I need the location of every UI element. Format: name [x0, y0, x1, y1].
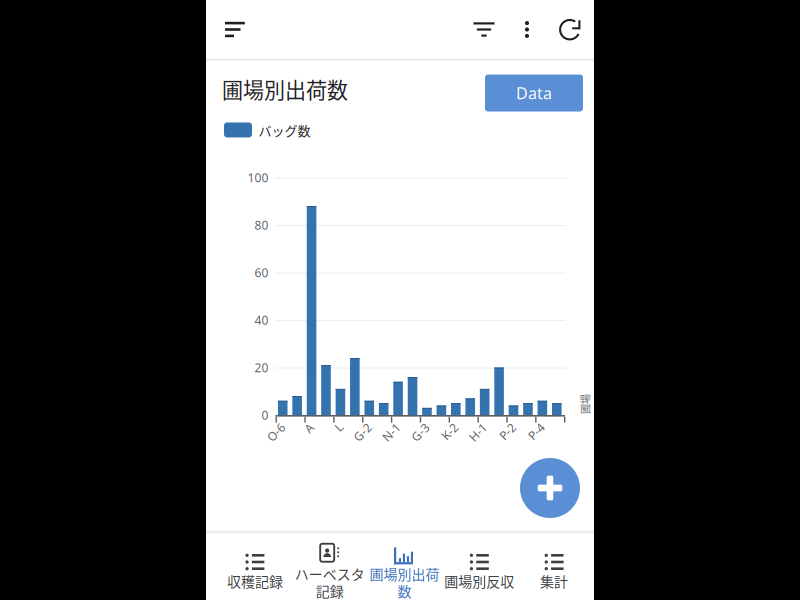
button[interactable]: ハーベスタ: [292, 533, 367, 600]
staticText: バッグ数: [258, 120, 310, 139]
staticText: 0: [261, 407, 268, 423]
staticText: ハーベスタ: [295, 564, 365, 584]
staticText: H-1: [471, 432, 491, 448]
staticText: 記録: [316, 581, 344, 600]
staticText: Data: [516, 82, 552, 104]
staticText: 20: [254, 360, 268, 375]
staticText: P-4: [531, 432, 549, 448]
staticText: 圃場別出荷: [369, 564, 439, 584]
staticText: 圃場別出荷数: [222, 74, 348, 104]
button[interactable]: 圃場別出荷: [367, 533, 442, 600]
button[interactable]: 圃場別反収: [442, 533, 517, 600]
button[interactable]: Add: [520, 458, 580, 518]
staticText: A: [310, 432, 318, 448]
staticText: 圃場別反収: [444, 571, 514, 591]
button[interactable]: Filter: [462, 0, 505, 59]
button[interactable]: 集計: [517, 533, 591, 600]
button[interactable]: More options: [505, 0, 548, 59]
button[interactable]: 収穫記録: [217, 533, 292, 600]
staticText: P-2: [502, 432, 520, 448]
staticText: 集計: [540, 571, 568, 591]
staticText: G-2: [356, 432, 376, 448]
staticText: O-6: [269, 432, 289, 448]
staticText: 収穫記録: [227, 571, 283, 591]
staticText: 圃場: [575, 397, 595, 411]
staticText: 80: [254, 217, 268, 233]
staticText: 40: [254, 312, 268, 328]
staticText: 60: [254, 265, 268, 280]
staticText: G-3: [414, 432, 434, 448]
staticText: 数: [397, 581, 411, 600]
button[interactable]: Refresh: [548, 0, 591, 59]
button[interactable]: Sort: [225, 0, 273, 59]
staticText: N-1: [385, 432, 405, 448]
staticText: 100: [247, 170, 268, 185]
button[interactable]: Data: [485, 74, 583, 111]
staticText: K-2: [445, 432, 463, 448]
